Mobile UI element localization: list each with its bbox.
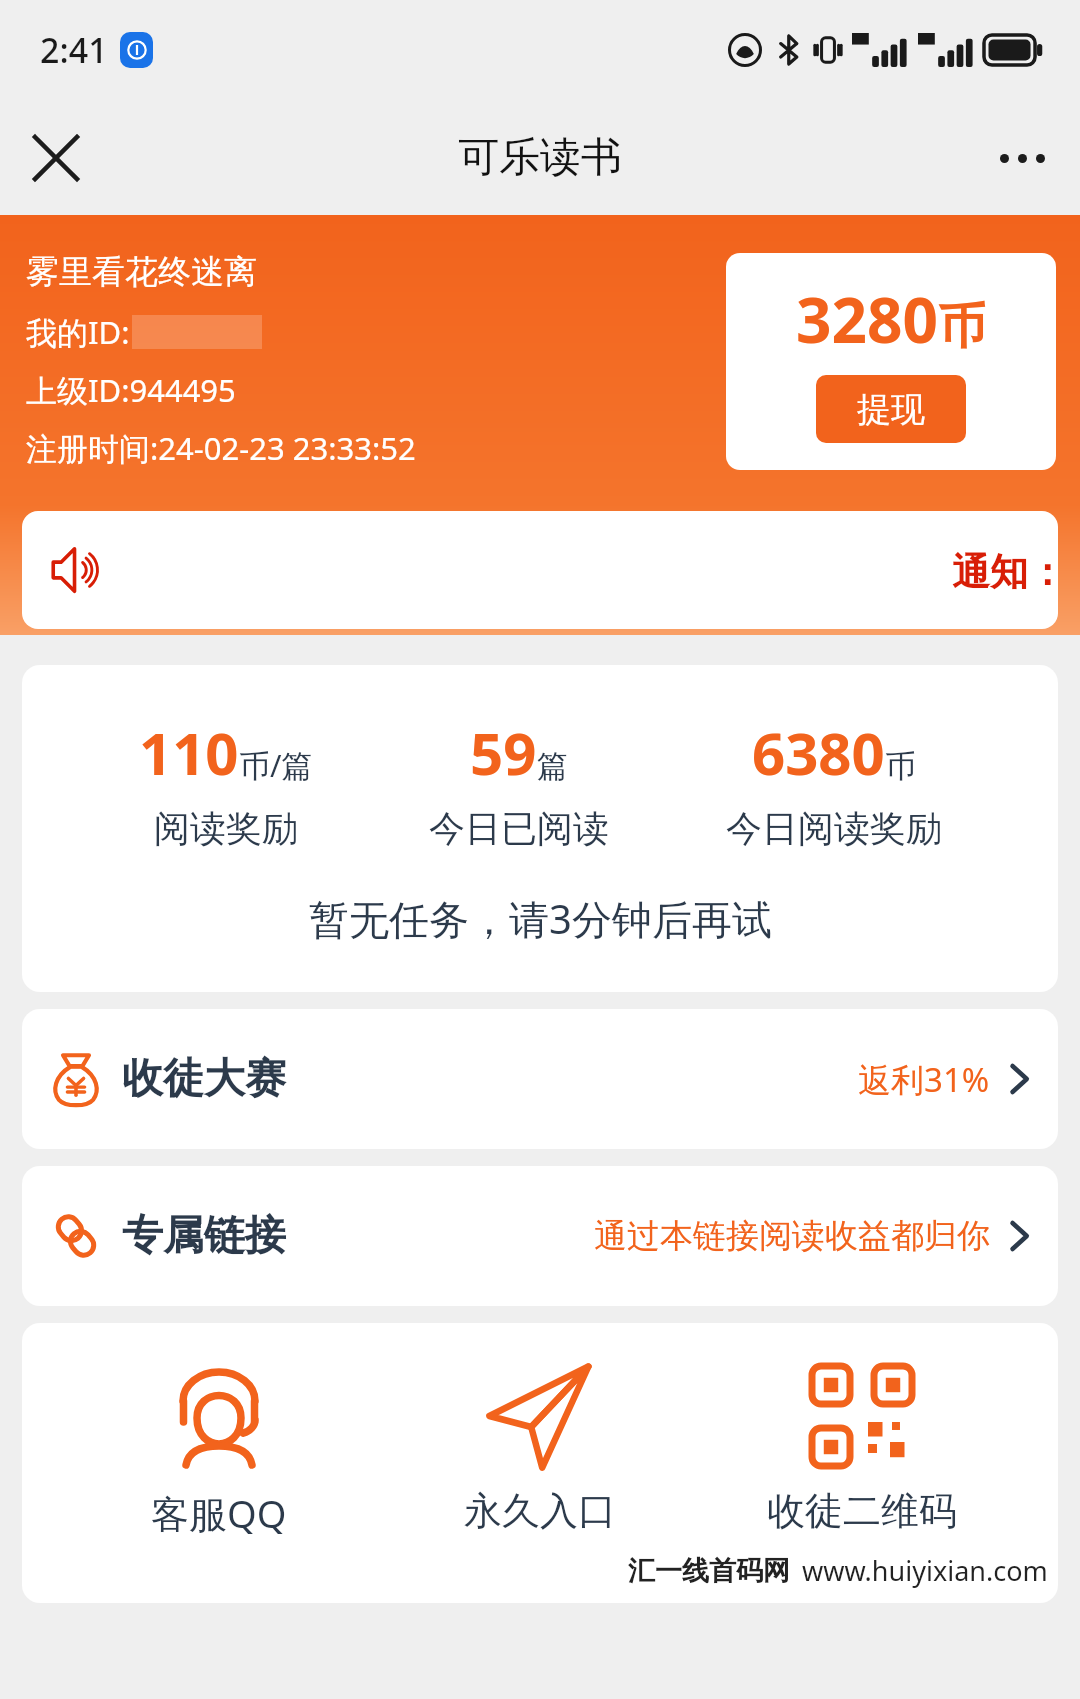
staticText: 雾里看花终迷离 — [26, 251, 257, 293]
staticText: 2:41 — [40, 27, 108, 73]
staticText: 收徒二维码 — [767, 1487, 957, 1535]
staticText: www.huiyixian.com — [802, 1552, 1048, 1589]
staticText: 收徒大赛 — [122, 1053, 286, 1105]
staticText: 6380 — [752, 713, 885, 792]
staticText: 3280 — [796, 277, 938, 361]
staticText: 可乐读书 — [458, 132, 622, 184]
staticText: 注册时间:24-02-23 23:33:52 — [26, 427, 416, 469]
button[interactable]: 专属链接 — [22, 1166, 1058, 1306]
staticText: 币 — [885, 747, 916, 786]
button[interactable]: Close — [18, 120, 94, 196]
staticText: 暂无任务，请3分钟后再试 — [309, 891, 772, 946]
staticText: 110 — [139, 713, 239, 792]
staticText: 汇一线首码网 — [628, 1554, 790, 1588]
button[interactable]: 110 — [22, 665, 1058, 992]
staticText: 返利31% — [858, 1057, 990, 1102]
staticText: 专属链接 — [122, 1210, 286, 1262]
staticText: 上级ID:944495 — [26, 369, 236, 411]
staticText: 永久入口 — [464, 1487, 616, 1535]
button[interactable]: More options — [984, 120, 1060, 196]
staticText: 币/篇 — [239, 744, 313, 786]
staticText: 今日阅读奖励 — [726, 806, 942, 851]
staticText: 59 — [470, 713, 537, 792]
button[interactable]: 3280 — [726, 253, 1056, 470]
staticText: 提现 — [857, 388, 925, 431]
button[interactable]: 收徒二维码 — [737, 1357, 987, 1539]
staticText: 客服QQ — [151, 1487, 287, 1539]
staticText: 通过本链接阅读收益都归你 — [594, 1215, 990, 1257]
staticText: 币 — [938, 297, 986, 357]
button[interactable]: 通知：2 — [22, 511, 1058, 629]
staticText: 篇 — [537, 747, 568, 786]
staticText: 今日已阅读 — [429, 806, 609, 851]
staticText: 阅读奖励 — [154, 806, 298, 851]
button[interactable]: 客服QQ — [94, 1357, 344, 1543]
staticText: 通知：2 — [952, 544, 1058, 596]
button[interactable]: 收徒大赛 — [22, 1009, 1058, 1149]
button[interactable]: 提现 — [816, 375, 966, 443]
button[interactable]: 永久入口 — [415, 1357, 665, 1539]
staticText: 我的ID: — [26, 311, 130, 353]
